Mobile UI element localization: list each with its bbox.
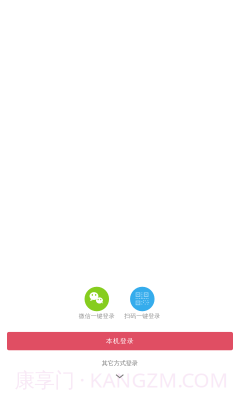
button[interactable]: 其它方式登录 bbox=[102, 359, 138, 378]
staticText: 康享门 · KANGZM.COM bbox=[14, 366, 228, 393]
button[interactable]: 扫码一键登录 bbox=[120, 287, 164, 320]
staticText: 本机登录 bbox=[106, 337, 134, 345]
staticText: 扫码一键登录 bbox=[124, 312, 160, 320]
staticText: 微信一键登录 bbox=[79, 312, 115, 320]
button[interactable]: 本机登录 bbox=[7, 332, 233, 350]
staticText: 其它方式登录 bbox=[102, 359, 138, 367]
button[interactable]: 微信一键登录 bbox=[75, 287, 119, 320]
